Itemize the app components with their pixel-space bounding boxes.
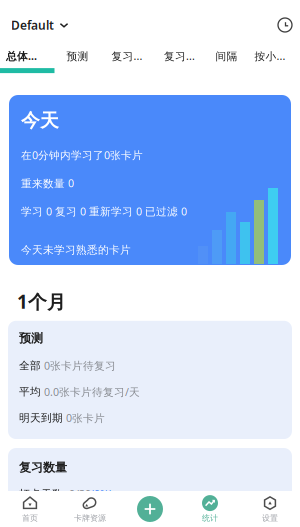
staticText: 在0分钟内学习了0张卡片 [21, 148, 143, 162]
button[interactable]: 复习时间 [154, 43, 208, 73]
staticText: 按小时分 [254, 49, 294, 63]
button[interactable]: 预测 [54, 44, 99, 73]
button[interactable]: 首页 [0, 490, 60, 527]
staticText: 打卡天数 [19, 487, 63, 500]
staticText: 首页 [22, 513, 38, 523]
staticText: Default [11, 17, 54, 33]
button[interactable]: 统计 [180, 490, 240, 527]
button[interactable]: 设置 [240, 490, 300, 527]
staticText: (0%) [91, 487, 112, 501]
staticText: 预测 [66, 50, 88, 63]
staticText: 设置 [262, 513, 278, 523]
staticText: 统计 [202, 513, 218, 523]
button[interactable]: 复习数量 [99, 43, 154, 73]
button[interactable]: History [268, 10, 300, 40]
staticText: 复习数量 [19, 460, 67, 475]
staticText: 1个月 [17, 289, 66, 314]
staticText: 预测 [19, 331, 43, 345]
staticText: 复习数量 [111, 49, 144, 63]
staticText: 明天到期 [19, 411, 63, 424]
button[interactable]: 总体情况 [0, 43, 54, 73]
staticText: 0.0张卡片待复习/天 [41, 385, 140, 399]
staticText: 重来数量 0 [21, 176, 74, 190]
staticText: 平均 [19, 385, 41, 398]
button[interactable]: 间隔 [208, 44, 245, 73]
staticText: 全部 [19, 359, 41, 372]
staticText: 今天未学习熟悉的卡片 [21, 243, 131, 256]
staticText: 间隔 [215, 50, 237, 63]
staticText: 卡牌资源 [74, 513, 106, 523]
staticText: 0/30 [63, 487, 91, 501]
button[interactable]: Default [0, 9, 79, 41]
staticText: 0张卡片待复习 [41, 358, 116, 373]
staticText: 复习时间 [164, 49, 201, 63]
staticText: 学习 0 复习 0 重新学习 0 已过滤 0 [21, 204, 187, 218]
button[interactable]: 卡牌资源 [60, 490, 120, 527]
button[interactable]: 按小时分 [245, 43, 300, 73]
staticText: 今天 [21, 109, 59, 132]
staticText: 总体情况 [6, 49, 45, 63]
button[interactable]: Add [120, 491, 180, 527]
staticText: 0张卡片 [63, 411, 105, 425]
